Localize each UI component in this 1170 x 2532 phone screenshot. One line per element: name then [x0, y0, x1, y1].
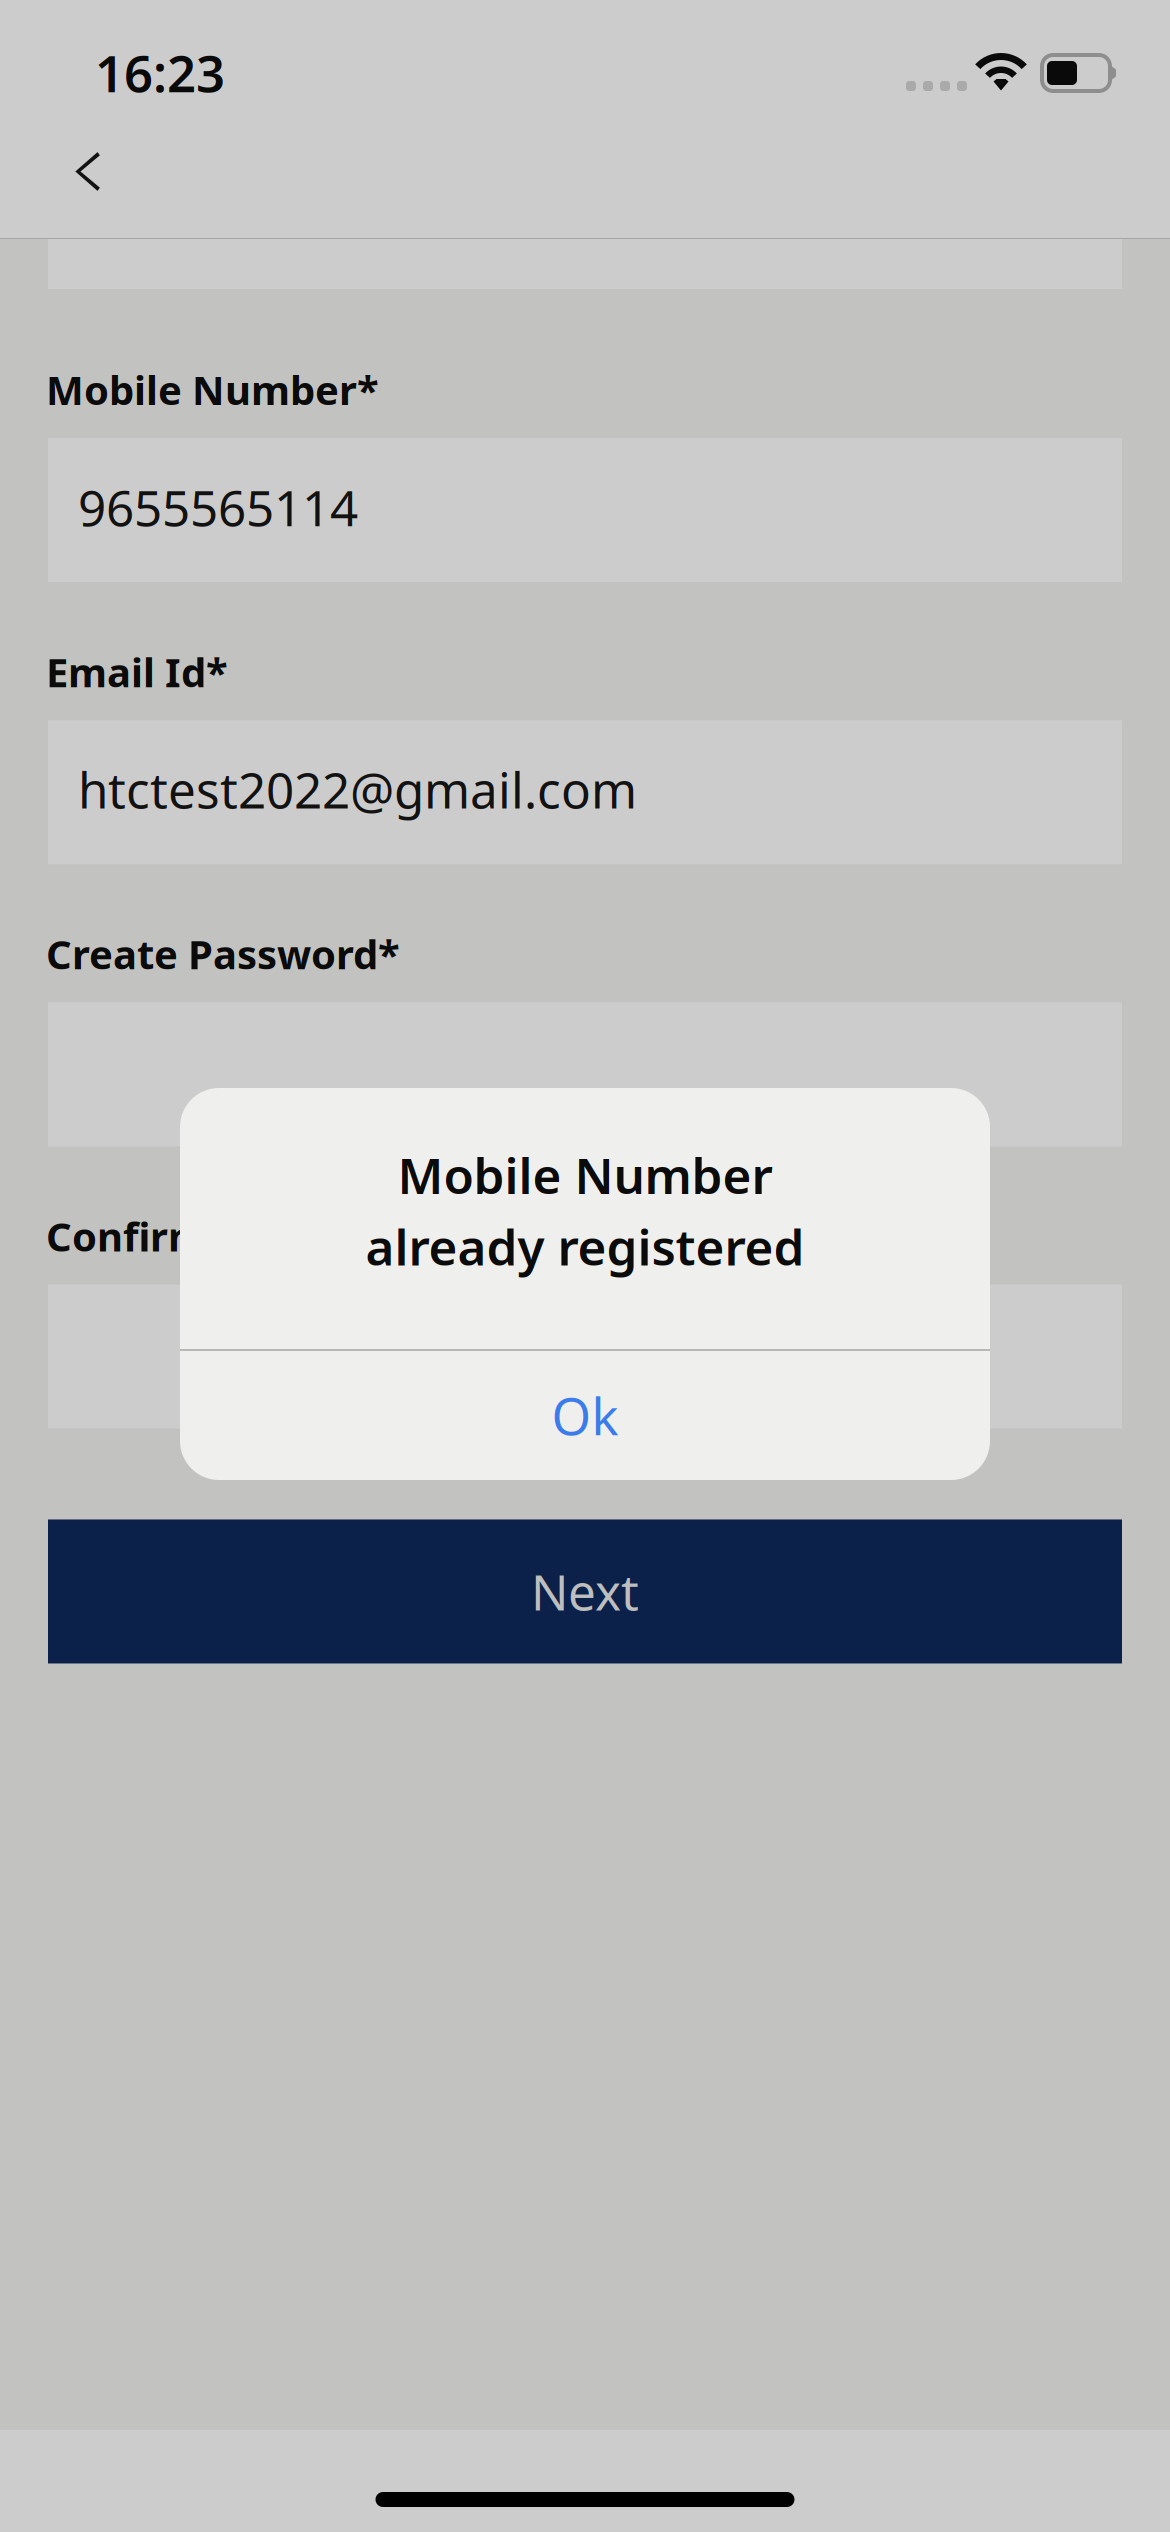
button[interactable]: Email Id* — [0, 720, 1170, 864]
staticText: 16:23 — [95, 39, 225, 106]
staticText: 9655565114 — [78, 474, 358, 540]
staticText: Ok — [551, 1382, 618, 1449]
button[interactable]: Back — [41, 124, 137, 220]
button[interactable]: Ok — [180, 1351, 990, 1480]
staticText: Email Id* — [46, 645, 228, 698]
staticText: Mobile Number* — [46, 363, 379, 416]
staticText: Next — [531, 1559, 639, 1624]
staticText: Create Password* — [46, 927, 400, 980]
button[interactable]: Mobile Number* — [0, 438, 1170, 582]
button[interactable]: Next — [0, 1519, 1170, 1663]
staticText: already registered — [365, 1213, 804, 1279]
staticText: htctest2022@gmail.com — [78, 756, 637, 822]
staticText: Confirm Password* — [46, 1209, 429, 1262]
button[interactable]: Confirm Password* — [0, 1284, 1170, 1428]
staticText: Mobile Number — [397, 1142, 772, 1207]
button[interactable]: Create Password* — [0, 1002, 1170, 1146]
